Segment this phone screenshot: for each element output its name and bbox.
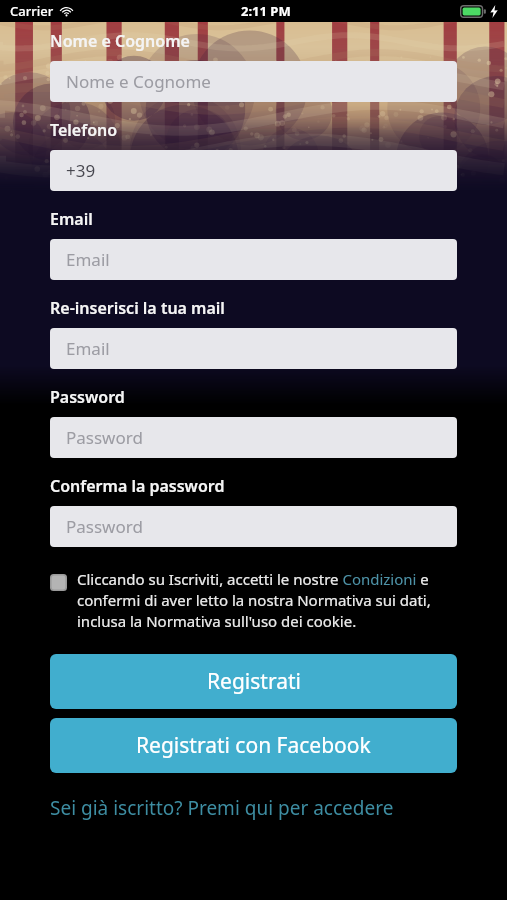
button[interactable]: Nome e Cognome <box>50 61 457 102</box>
button[interactable]: Email <box>50 328 457 369</box>
button[interactable]: Registrati con Facebook <box>50 718 457 773</box>
staticText: Registrati con Facebook <box>136 731 371 760</box>
button[interactable]: Accetta condizioni <box>50 569 457 632</box>
button[interactable]: Sei già iscritto? Premi qui per accedere <box>50 795 457 821</box>
staticText: Cliccando su Iscriviti, accetti le nostr… <box>77 569 457 632</box>
staticText: Conferma la password <box>50 475 225 497</box>
staticText: Re-inserisci la tua mail <box>50 297 225 319</box>
staticText: Sei già iscritto? Premi qui per accedere <box>50 795 394 821</box>
button[interactable]: Password <box>50 417 457 458</box>
button[interactable]: Registrati <box>50 654 457 709</box>
staticText: Nome e Cognome <box>66 70 211 93</box>
staticText: Registrati <box>207 667 301 696</box>
staticText: Telefono <box>50 119 118 141</box>
button[interactable]: Password <box>50 506 457 547</box>
button[interactable]: +39 <box>50 150 457 191</box>
staticText: 2:11 PM <box>241 2 291 20</box>
button[interactable]: Email <box>50 239 457 280</box>
staticText: Email <box>66 337 110 360</box>
staticText: Password <box>50 386 125 408</box>
staticText: +39 <box>66 159 96 182</box>
other: Accetta condizioni <box>50 574 67 591</box>
staticText: Password <box>66 515 143 538</box>
staticText: Email <box>50 208 93 230</box>
staticText: Password <box>66 426 143 449</box>
staticText: Nome e Cognome <box>50 30 190 52</box>
staticText: Email <box>66 248 110 271</box>
staticText: Carrier <box>10 2 54 20</box>
